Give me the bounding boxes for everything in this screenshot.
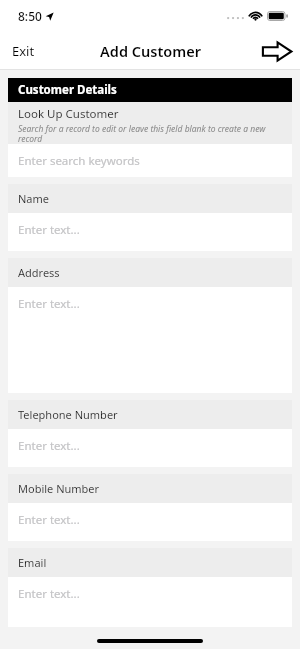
staticText: Customer Details — [18, 82, 117, 98]
staticText: Name — [18, 191, 50, 206]
staticText: Enter text... — [18, 512, 80, 528]
staticText: Address — [18, 265, 60, 280]
staticText: Enter text... — [18, 586, 80, 602]
button[interactable]: Enter text... — [8, 577, 292, 627]
staticText: Add Customer — [100, 41, 201, 61]
staticText: Look Up Customer — [18, 106, 119, 122]
staticText: Enter text... — [18, 222, 80, 238]
button[interactable]: Name — [8, 184, 292, 213]
button[interactable]: Next — [254, 32, 300, 70]
button[interactable]: Enter text... — [8, 429, 292, 467]
staticText: Enter text... — [18, 438, 80, 454]
button[interactable]: Enter text... — [8, 287, 292, 393]
staticText: 8:50 — [18, 8, 42, 24]
staticText: Enter search keywords — [18, 153, 140, 169]
button[interactable]: Look Up Customer — [8, 102, 292, 144]
button[interactable]: Enter text... — [8, 213, 292, 251]
button[interactable]: Telephone Number — [8, 400, 292, 429]
staticText: Exit — [12, 42, 35, 60]
button[interactable]: Email — [8, 548, 292, 577]
staticText: Telephone Number — [18, 407, 118, 422]
button[interactable]: Exit — [0, 32, 58, 70]
staticText: Enter text... — [18, 296, 80, 312]
button[interactable]: Mobile Number — [8, 474, 292, 503]
staticText: Search for a record to edit or leave thi… — [18, 123, 284, 144]
button[interactable]: Enter text... — [8, 503, 292, 541]
staticText: Mobile Number — [18, 481, 100, 496]
staticText: Email — [18, 555, 47, 570]
button[interactable]: Address — [8, 258, 292, 287]
button[interactable]: Enter search keywords — [8, 144, 292, 177]
